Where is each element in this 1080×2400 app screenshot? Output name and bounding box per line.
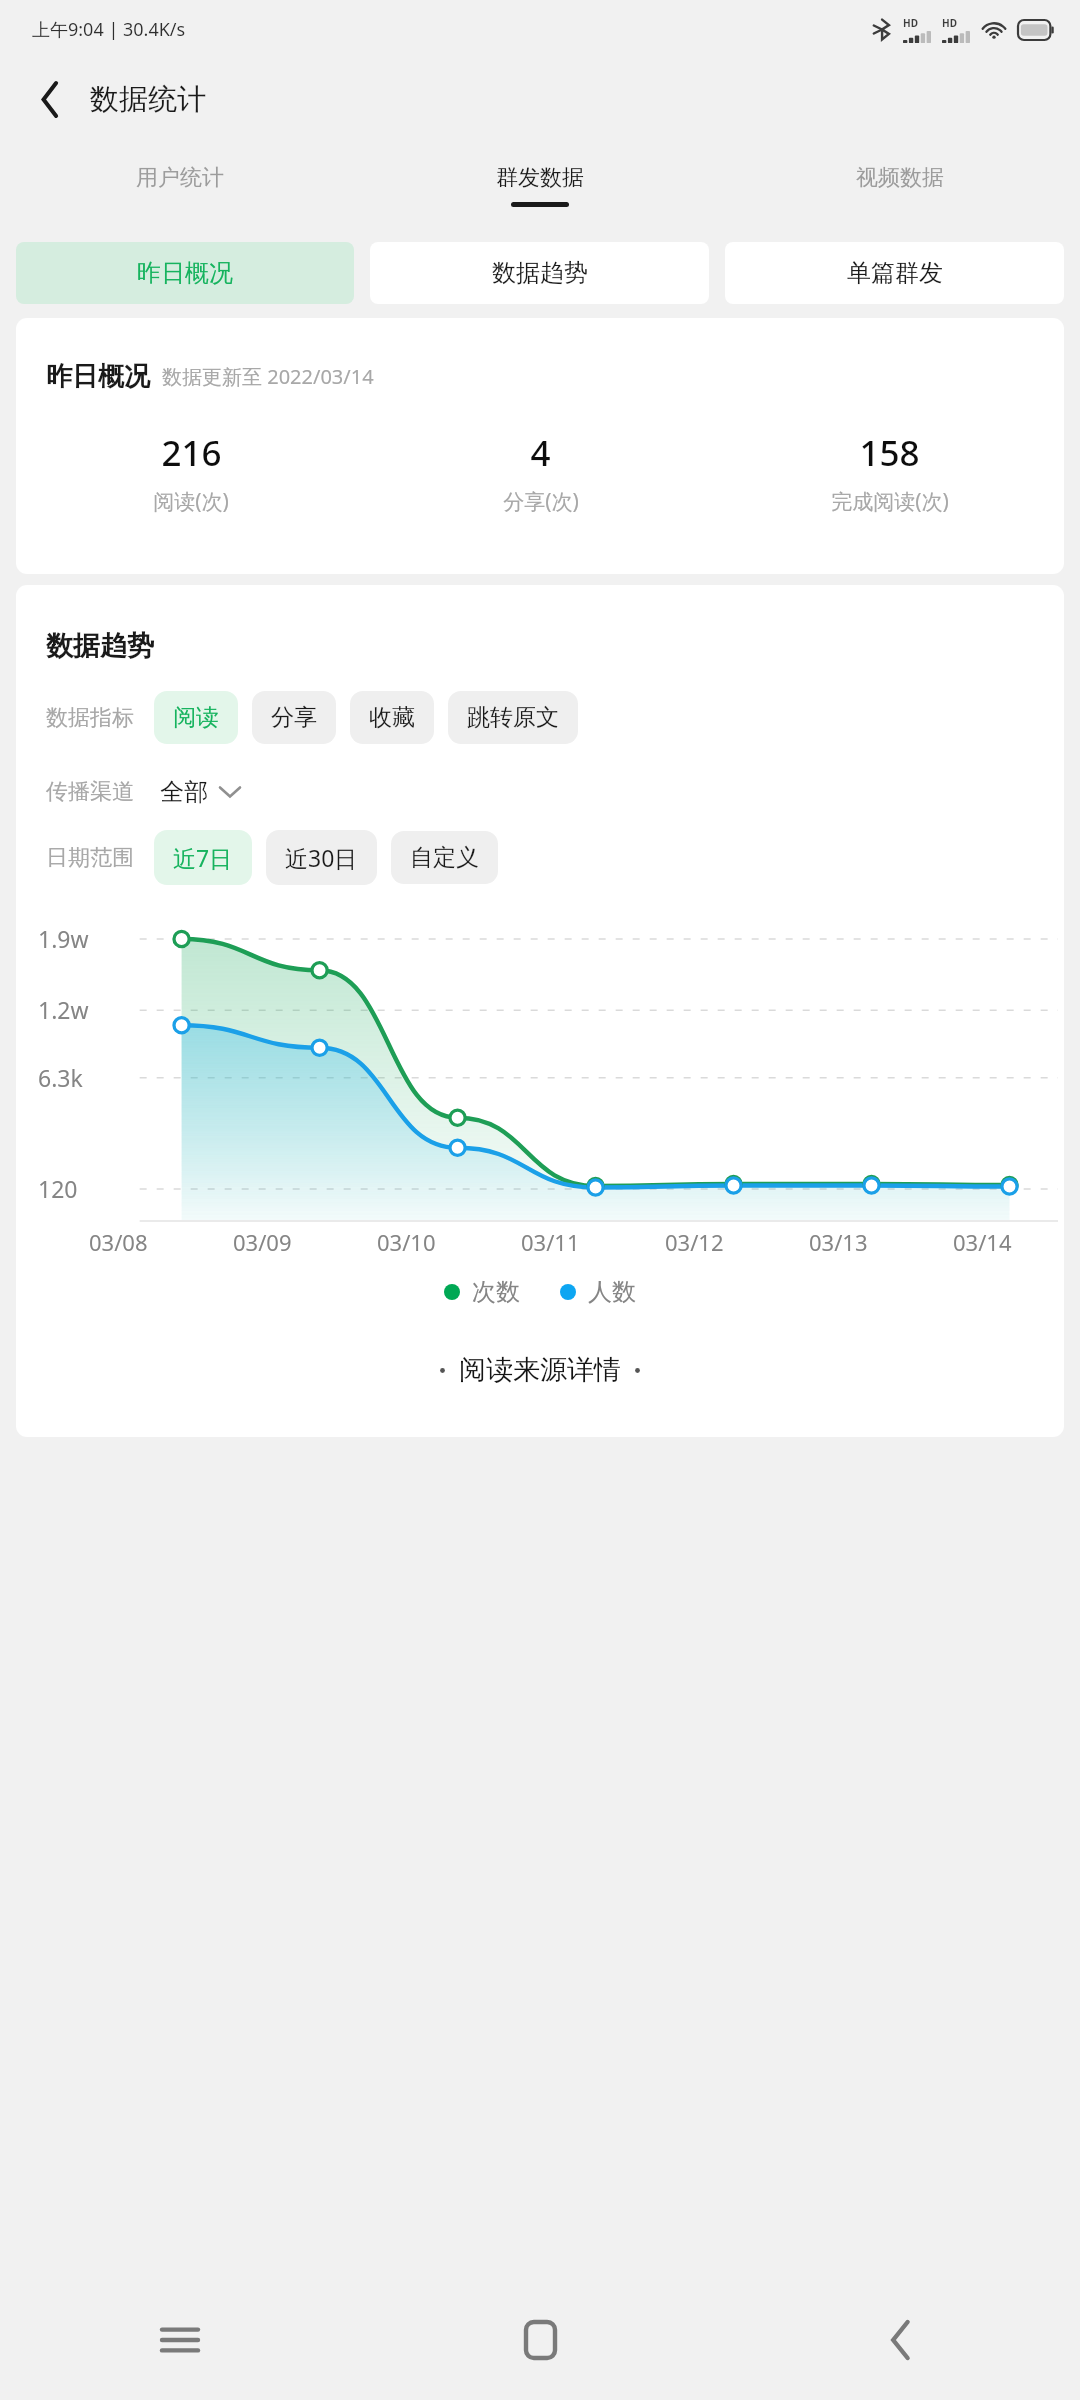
staticText: 分享(次) [503, 487, 579, 516]
staticText: 数据统计 [90, 81, 206, 118]
staticText: 03/11 [521, 1227, 580, 1257]
button[interactable]: 158 [715, 429, 1064, 516]
staticText: 数据更新至 2022/03/14 [162, 363, 374, 390]
button[interactable]: Recent apps [0, 2280, 360, 2400]
button[interactable]: 用户统计 [0, 140, 360, 230]
button[interactable]: 阅读来源详情 [16, 1353, 1064, 1387]
button[interactable]: 单篇群发 [725, 242, 1064, 304]
staticText: 数据趋势 [492, 258, 588, 288]
button[interactable]: 阅读 [154, 691, 238, 744]
staticText: 03/08 [89, 1227, 148, 1257]
staticText: 03/12 [665, 1227, 724, 1257]
staticText: 全部 [160, 777, 208, 807]
staticText: 03/14 [953, 1227, 1012, 1257]
staticText: 216 [161, 429, 222, 477]
staticText: 自定义 [410, 843, 479, 872]
staticText: 传播渠道 [46, 778, 134, 806]
staticText: 日期范围 [46, 844, 134, 872]
staticText: 收藏 [369, 703, 415, 732]
staticText: 6.3k [38, 1062, 83, 1093]
staticText: 阅读来源详情 [459, 1353, 621, 1387]
staticText: 4 [530, 429, 551, 477]
staticText: 用户统计 [136, 164, 224, 192]
button[interactable]: 自定义 [391, 831, 498, 884]
button[interactable]: 全部 [154, 769, 246, 815]
staticText: 数据指标 [46, 704, 134, 732]
button[interactable]: 视频数据 [720, 140, 1080, 230]
button[interactable]: 群发数据 [360, 140, 720, 230]
staticText: 次数 [472, 1277, 520, 1307]
staticText: 分享 [271, 703, 317, 732]
staticText: 阅读 [173, 703, 219, 732]
staticText: 完成阅读(次) [831, 487, 949, 516]
staticText: 数据趋势 [46, 629, 154, 663]
button[interactable]: Home [360, 2280, 720, 2400]
button[interactable]: 216 [16, 429, 366, 516]
button[interactable]: 跳转原文 [448, 691, 578, 744]
staticText: 上午9:04 | 30.4K/s [32, 17, 186, 42]
staticText: 单篇群发 [847, 258, 943, 288]
staticText: HD [903, 16, 918, 30]
staticText: 158 [859, 429, 920, 477]
staticText: 120 [38, 1173, 78, 1204]
button[interactable]: 数据趋势 [370, 242, 709, 304]
staticText: HD [942, 16, 957, 30]
staticText: 近7日 [173, 842, 233, 873]
button[interactable]: 4 [366, 429, 715, 516]
staticText: 03/09 [233, 1227, 292, 1257]
staticText: 1.9w [38, 923, 89, 954]
staticText: 03/13 [809, 1227, 868, 1257]
button[interactable]: 近7日 [154, 830, 252, 885]
staticText: 03/10 [377, 1227, 436, 1257]
staticText: 昨日概况 [137, 258, 233, 288]
button[interactable]: 昨日概况 [16, 242, 354, 304]
button[interactable]: 分享 [252, 691, 336, 744]
staticText: 近30日 [285, 842, 358, 873]
staticText: 视频数据 [856, 164, 944, 192]
button[interactable]: 收藏 [350, 691, 434, 744]
button[interactable]: Back [22, 71, 78, 127]
staticText: 群发数据 [496, 164, 584, 192]
button[interactable]: 近30日 [266, 830, 377, 885]
staticText: 跳转原文 [467, 703, 559, 732]
staticText: 1.2w [38, 994, 89, 1025]
staticText: 人数 [588, 1277, 636, 1307]
staticText: 昨日概况 [46, 360, 150, 393]
button[interactable]: Back [720, 2280, 1080, 2400]
staticText: 阅读(次) [153, 487, 229, 516]
